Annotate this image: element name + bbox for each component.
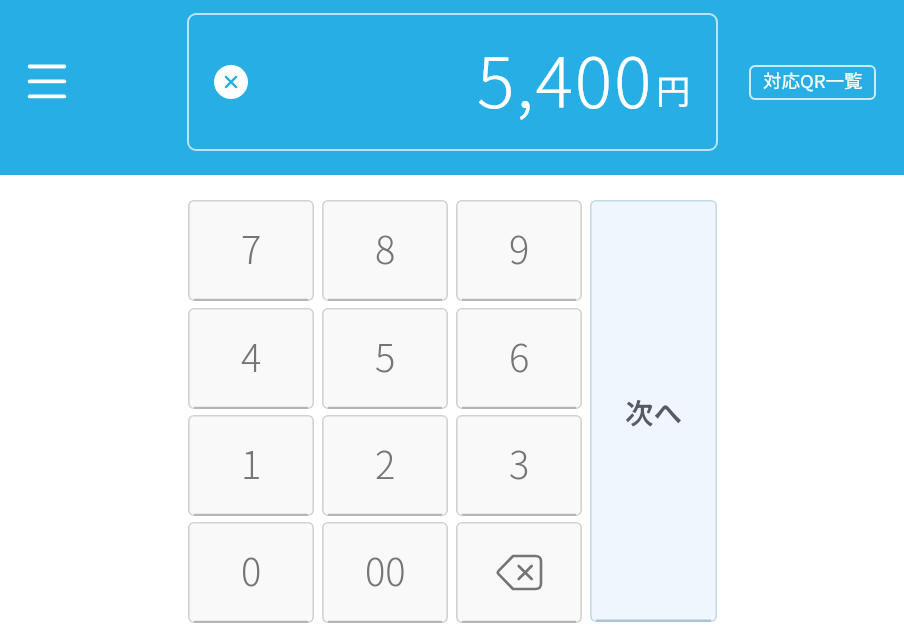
staticText: 3: [509, 435, 530, 490]
staticText: 6: [509, 328, 530, 383]
button[interactable]: 6: [456, 308, 582, 409]
staticText: 0: [241, 542, 262, 597]
staticText: 8: [375, 220, 396, 275]
button[interactable]: Backspace: [456, 522, 582, 623]
button[interactable]: 9: [456, 200, 582, 301]
button[interactable]: 3: [456, 415, 582, 516]
staticText: 7: [241, 220, 262, 275]
staticText: 対応QR一覧: [763, 67, 863, 94]
staticText: 5,400: [477, 27, 654, 128]
button[interactable]: 対応QR一覧: [749, 65, 876, 100]
staticText: 2: [375, 435, 396, 490]
staticText: 5: [375, 328, 396, 383]
button[interactable]: 8: [322, 200, 448, 301]
button[interactable]: 0: [188, 522, 314, 623]
button[interactable]: Clear amount: [214, 65, 248, 99]
staticText: 4: [241, 328, 262, 383]
button[interactable]: 2: [322, 415, 448, 516]
staticText: 1: [241, 435, 262, 490]
button[interactable]: 7: [188, 200, 314, 301]
button[interactable]: 1: [188, 415, 314, 516]
button[interactable]: 4: [188, 308, 314, 409]
button[interactable]: 00: [322, 522, 448, 623]
staticText: 00: [365, 542, 406, 597]
button[interactable]: Menu: [18, 54, 74, 110]
button[interactable]: 5: [322, 308, 448, 409]
button[interactable]: 次へ: [590, 200, 717, 622]
staticText: 次へ: [625, 391, 683, 432]
staticText: 円: [656, 65, 690, 114]
staticText: 9: [509, 220, 530, 275]
